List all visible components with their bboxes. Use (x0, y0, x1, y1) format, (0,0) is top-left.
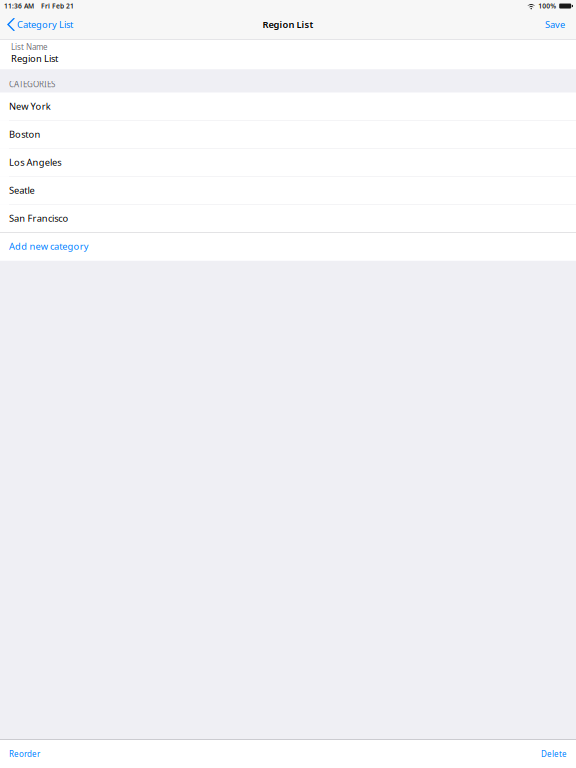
button[interactable]: Los Angeles (0, 148, 576, 176)
staticText: Category List (17, 18, 73, 31)
staticText: Boston (9, 128, 40, 140)
staticText: Seatle (9, 184, 34, 196)
staticText: List Name (11, 42, 48, 52)
button[interactable]: List Name (0, 39, 576, 69)
staticText: San Francisco (9, 212, 68, 224)
button[interactable]: Save (537, 12, 576, 37)
button[interactable]: New York (0, 92, 576, 120)
staticText: Region List (11, 52, 58, 65)
staticText: CATEGORIES (9, 79, 55, 89)
staticText: Fri Feb 21 (41, 2, 74, 10)
staticText: Reorder (9, 749, 40, 759)
staticText: New York (9, 100, 51, 112)
staticText: 100% (538, 2, 556, 10)
button[interactable]: Delete (531, 740, 576, 768)
button[interactable]: Category List (0, 12, 79, 37)
staticText: Add new category (9, 240, 89, 252)
button[interactable]: San Francisco (0, 204, 576, 232)
staticText: Save (545, 18, 565, 31)
button[interactable]: Boston (0, 120, 576, 148)
button[interactable]: Add new category (0, 232, 576, 260)
button[interactable]: Seatle (0, 176, 576, 204)
staticText: 11:36 AM (4, 2, 34, 10)
staticText: Region List (262, 18, 313, 31)
staticText: Delete (541, 749, 567, 759)
staticText: Los Angeles (9, 156, 61, 168)
button[interactable]: Reorder (0, 740, 50, 768)
